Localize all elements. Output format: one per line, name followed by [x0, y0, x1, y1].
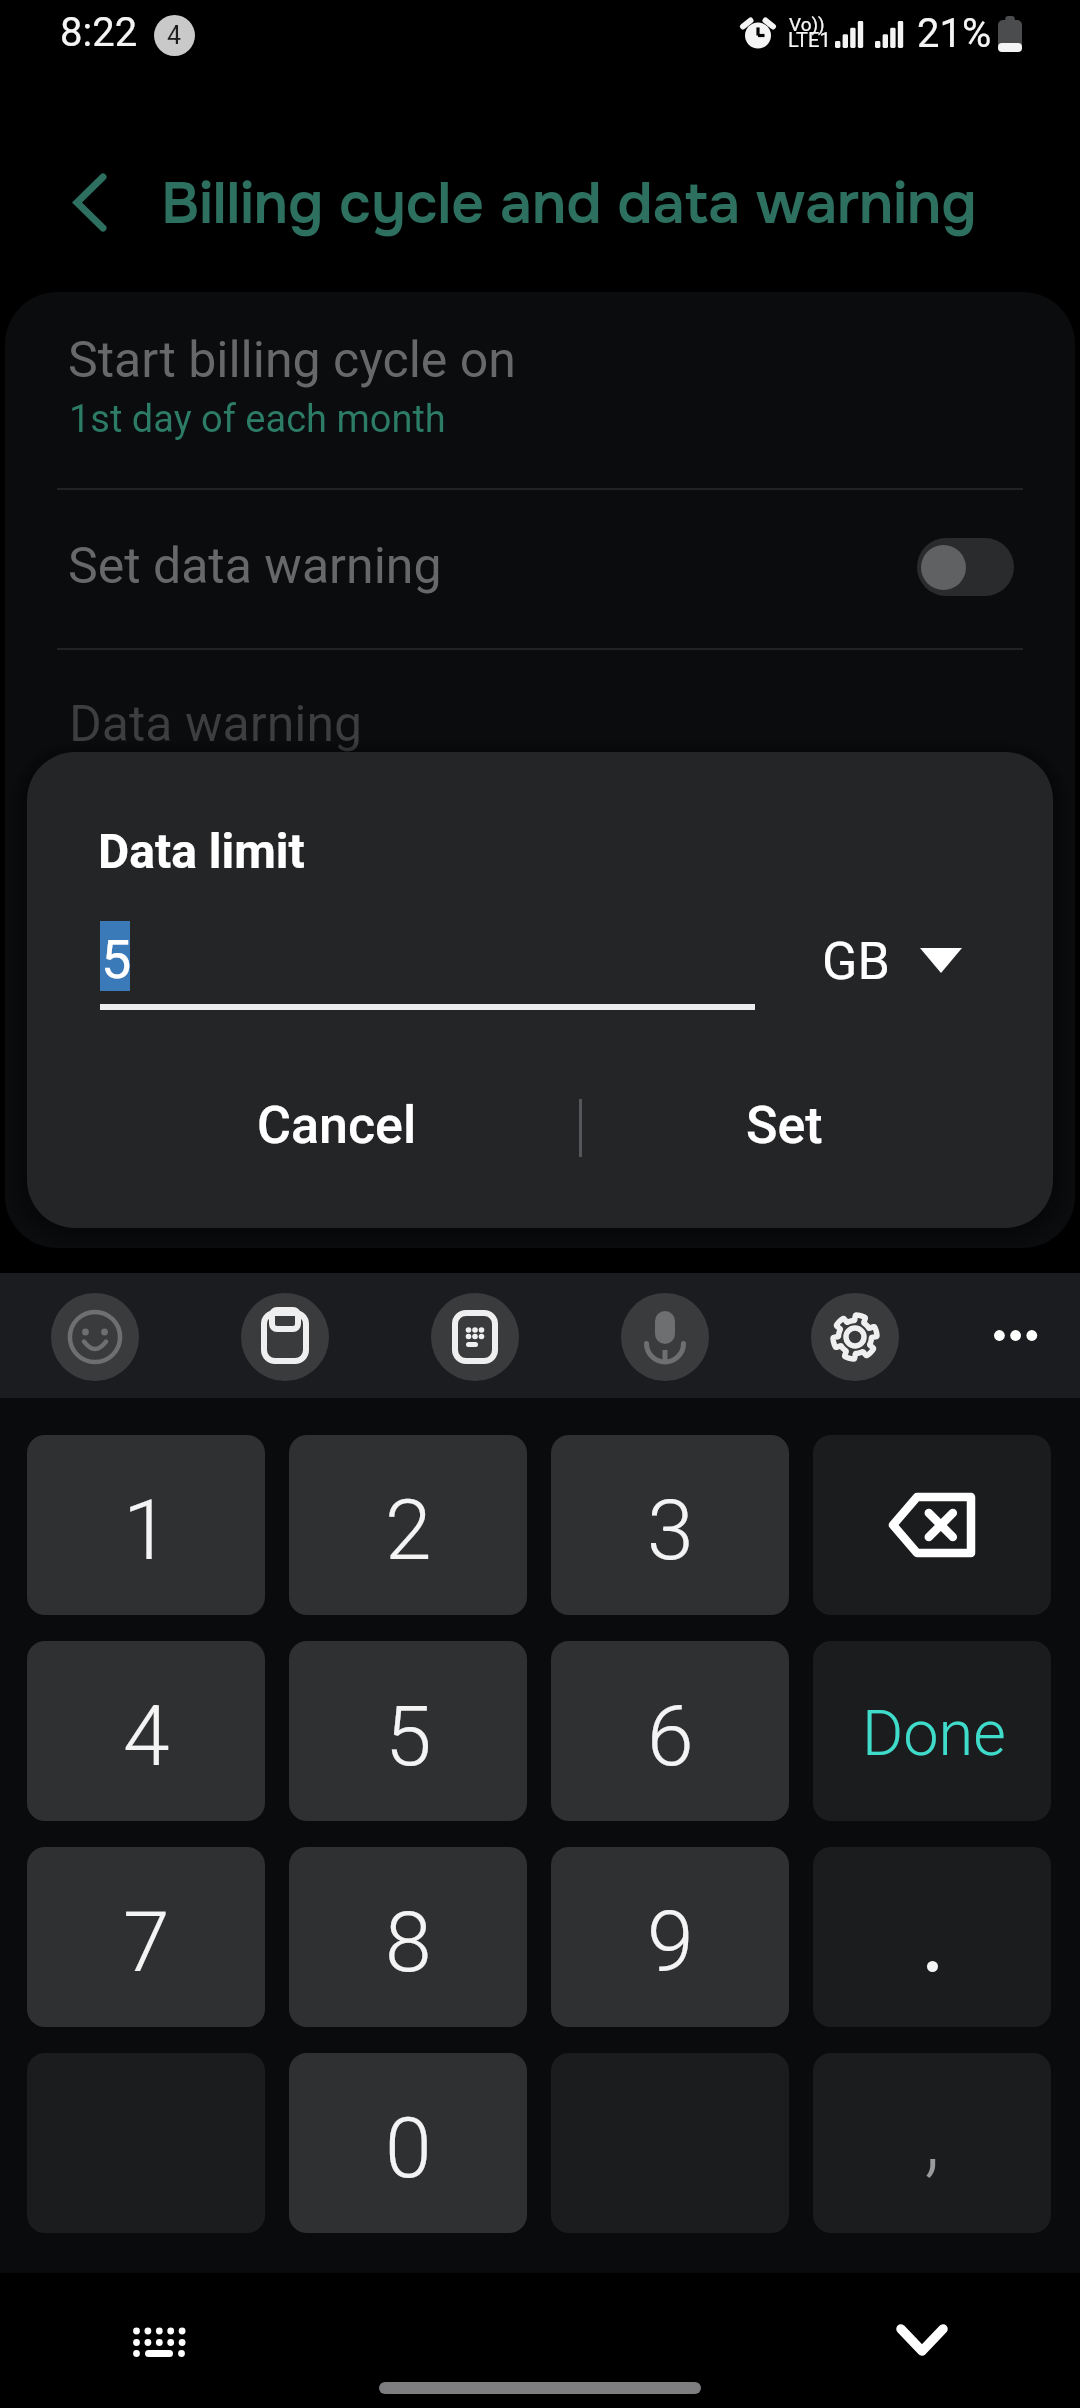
- staticText: 9: [647, 1893, 694, 1991]
- button[interactable]: 7: [27, 1847, 265, 2027]
- button[interactable]: More options: [955, 1273, 1075, 1398]
- staticText: 8: [385, 1893, 432, 1991]
- staticText: Data limit: [98, 823, 305, 879]
- button[interactable]: 5: [289, 1641, 527, 1821]
- staticText: 4: [167, 21, 182, 50]
- staticText: GB: [822, 931, 890, 992]
- button[interactable]: Decimal point: [813, 1847, 1051, 2027]
- staticText: 4: [123, 1687, 170, 1785]
- staticText: 0: [385, 2099, 432, 2197]
- staticText: 3: [647, 1481, 694, 1579]
- staticText: Set: [746, 1095, 823, 1156]
- staticText: Start billing cycle on: [68, 331, 516, 390]
- button[interactable]: 6: [551, 1641, 789, 1821]
- button[interactable]: Comma: [813, 2053, 1051, 2233]
- staticText: Cancel: [257, 1095, 417, 1156]
- staticText: LTE1: [788, 28, 831, 51]
- staticText: 2: [385, 1481, 432, 1579]
- button[interactable]: Emoji: [51, 1293, 139, 1381]
- button[interactable]: 0: [289, 2053, 527, 2233]
- button[interactable]: Set data warning: [917, 538, 1014, 596]
- staticText: Done: [862, 1697, 1006, 1771]
- button[interactable]: Navigate up: [36, 148, 144, 256]
- staticText: 5: [101, 928, 132, 991]
- button[interactable]: 3: [551, 1435, 789, 1615]
- staticText: 1st day of each month: [69, 397, 446, 442]
- button[interactable]: 8: [289, 1847, 527, 2027]
- button[interactable]: Done: [813, 1641, 1051, 1821]
- button[interactable]: Voice input: [621, 1293, 709, 1381]
- button[interactable]: Change keyboard: [98, 2281, 220, 2403]
- staticText: 1: [123, 1481, 170, 1579]
- button[interactable]: Hide keyboard: [861, 2279, 983, 2401]
- staticText: ,: [924, 2089, 941, 2187]
- staticText: 7: [123, 1893, 170, 1991]
- staticText: Vo)): [789, 13, 825, 35]
- button[interactable]: 2: [289, 1435, 527, 1615]
- button[interactable]: Backspace: [813, 1435, 1051, 1615]
- button[interactable]: 1: [27, 1435, 265, 1615]
- button[interactable]: 4: [27, 1641, 265, 1821]
- button[interactable]: Cancel: [182, 1070, 492, 1180]
- staticText: 5: [385, 1687, 432, 1785]
- button[interactable]: Number pad: [431, 1293, 519, 1381]
- staticText: Billing cycle and data warning: [161, 168, 977, 241]
- staticText: 21%: [917, 10, 992, 57]
- button[interactable]: Set: [629, 1070, 939, 1180]
- staticText: 8:22: [60, 9, 138, 56]
- staticText: 6: [647, 1687, 694, 1785]
- button[interactable]: Clipboard: [241, 1293, 329, 1381]
- staticText: Data warning: [69, 695, 363, 754]
- button[interactable]: Keyboard settings: [811, 1293, 899, 1381]
- staticText: Set data warning: [68, 537, 442, 596]
- button[interactable]: 9: [551, 1847, 789, 2027]
